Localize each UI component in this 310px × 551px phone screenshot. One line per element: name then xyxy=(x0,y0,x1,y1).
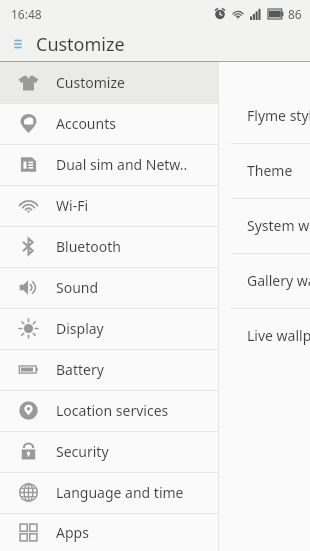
staticText: 16:48 xyxy=(11,6,42,22)
staticText: Language and time xyxy=(56,483,184,502)
staticText: Gallery wallpaper xyxy=(247,271,310,290)
staticText: Battery xyxy=(56,360,104,379)
staticText: Accounts xyxy=(56,114,116,133)
button[interactable]: Bluetooth xyxy=(0,226,218,267)
button[interactable]: Customize xyxy=(0,62,218,103)
staticText: Flyme style xyxy=(247,106,310,125)
staticText: Location services xyxy=(56,401,169,420)
staticText: Dual sim and Netw.. xyxy=(56,155,188,174)
button[interactable]: Wi-Fi xyxy=(0,185,218,226)
button[interactable]: Location services xyxy=(0,390,218,431)
button[interactable]: Apps xyxy=(0,513,218,551)
button[interactable]: Security xyxy=(0,431,218,472)
staticText: Sound xyxy=(56,278,99,297)
button[interactable]: Sound xyxy=(0,267,218,308)
button[interactable]: Language and time xyxy=(0,472,218,513)
staticText: Theme xyxy=(247,161,293,180)
button[interactable]: Battery xyxy=(0,349,218,390)
button[interactable]: Display xyxy=(0,308,218,349)
button[interactable]: Accounts xyxy=(0,103,218,144)
staticText: Customize xyxy=(56,73,125,92)
staticText: Apps xyxy=(56,523,89,542)
button[interactable]: Gallery wallpaper xyxy=(219,253,310,308)
button[interactable]: Theme xyxy=(219,143,310,198)
staticText: Wi-Fi xyxy=(56,196,89,215)
staticText: Live wallpaper xyxy=(247,326,310,345)
button[interactable]: Live wallpaper xyxy=(219,308,310,363)
staticText: System wallpaper xyxy=(247,216,310,235)
button[interactable]: System wallpaper xyxy=(219,198,310,253)
staticText: Security xyxy=(56,442,109,461)
staticText: 86 xyxy=(288,6,302,22)
staticText: Customize xyxy=(36,32,125,57)
button[interactable]: Menu xyxy=(6,32,30,56)
staticText: Bluetooth xyxy=(56,237,121,256)
staticText: Display xyxy=(56,319,104,338)
button[interactable]: Dual sim and Netw.. xyxy=(0,144,218,185)
button[interactable]: Flyme style xyxy=(219,88,310,143)
